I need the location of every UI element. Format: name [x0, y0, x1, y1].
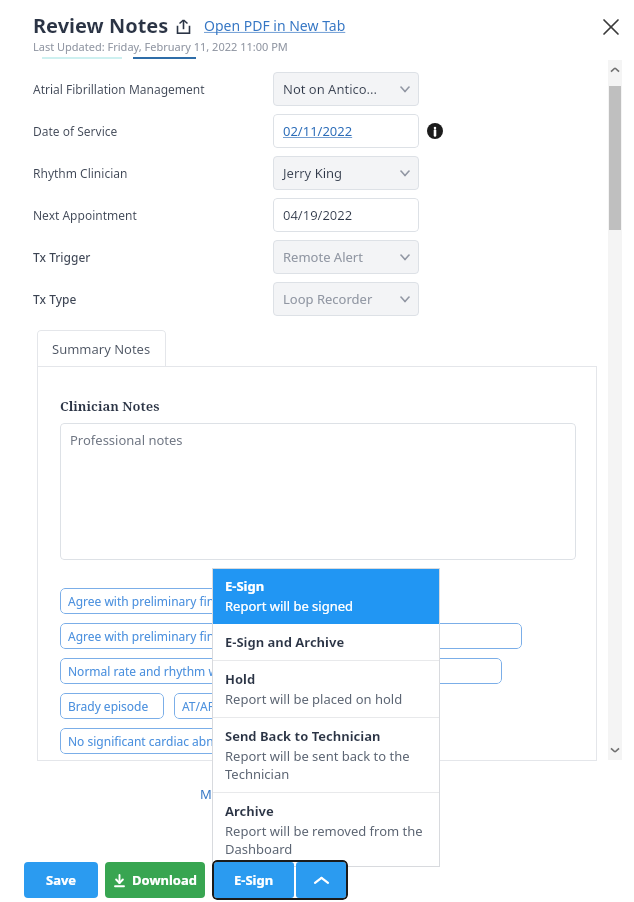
- button[interactable]: Loop Recorder: [273, 282, 419, 316]
- button[interactable]: Share: [172, 15, 194, 37]
- button[interactable]: Open PDF in New Tab: [204, 16, 346, 35]
- staticText: Clinician Notes: [60, 397, 160, 415]
- staticText: 04/19/2022: [283, 206, 353, 224]
- staticText: Download: [132, 871, 197, 889]
- button[interactable]: Send Back to Technician: [212, 717, 440, 792]
- button[interactable]: Scroll down: [608, 742, 622, 758]
- staticText: Summary Notes: [52, 340, 151, 358]
- button[interactable]: Archive: [212, 792, 440, 867]
- staticText: Open PDF in New Tab: [204, 16, 346, 35]
- button[interactable]: No significant cardiac abnormality: [60, 728, 320, 754]
- button[interactable]: Brady episode: [60, 693, 164, 719]
- staticText: Tx Type: [33, 291, 77, 307]
- button[interactable]: Summary Notes: [37, 330, 166, 367]
- staticText: Last Updated: Friday, February 11, 2022 …: [33, 39, 288, 54]
- staticText: Report will be removed from the Dashboar…: [225, 822, 430, 858]
- staticText: Not on Antico...: [283, 80, 378, 98]
- button[interactable]: Agree with preliminary findings, additio…: [60, 623, 522, 649]
- staticText: Rhythm Clinician: [33, 165, 128, 181]
- staticText: 02/11/2022: [283, 122, 353, 140]
- staticText: More Options: [200, 785, 284, 803]
- button[interactable]: Close: [598, 14, 624, 40]
- button[interactable]: 02/11/2022: [273, 114, 419, 148]
- staticText: Archive: [225, 802, 274, 820]
- button[interactable]: More actions: [296, 862, 346, 898]
- staticText: Agree with preliminary findings, additio…: [68, 628, 409, 644]
- staticText: Review Notes: [33, 12, 169, 39]
- staticText: Jerry King: [283, 164, 343, 182]
- staticText: AT/AF episode: [182, 698, 262, 714]
- staticText: E-Sign: [234, 871, 274, 889]
- button[interactable]: 04/19/2022: [273, 198, 419, 232]
- staticText: Send Back to Technician: [225, 727, 381, 745]
- staticText: E-Sign: [225, 577, 265, 595]
- button[interactable]: Remote Alert: [273, 240, 419, 274]
- staticText: Brady episode: [68, 698, 149, 714]
- staticText: Professional notes: [70, 431, 183, 449]
- button[interactable]: Save: [24, 862, 98, 898]
- button[interactable]: Agree with preliminary findings: [60, 588, 360, 614]
- staticText: Agree with preliminary findings: [68, 593, 246, 609]
- staticText: Report will be signed: [225, 597, 430, 615]
- staticText: Next Appointment: [33, 207, 137, 223]
- button[interactable]: Download: [105, 862, 205, 898]
- button[interactable]: E-Sign: [214, 862, 294, 898]
- button[interactable]: Hold: [212, 660, 440, 717]
- button[interactable]: Not on Antico...: [273, 72, 419, 106]
- staticText: Atrial Fibrillation Management: [33, 81, 205, 97]
- staticText: Report will be placed on hold: [225, 690, 430, 708]
- staticText: Normal rate and rhythm with no significa…: [68, 663, 360, 679]
- staticText: Tx Trigger: [33, 249, 91, 265]
- staticText: Date of Service: [33, 123, 118, 139]
- button[interactable]: AT/AF episode: [174, 693, 278, 719]
- staticText: No significant cardiac abnormality: [68, 733, 261, 749]
- button[interactable]: E-Sign: [212, 568, 440, 624]
- staticText: Loop Recorder: [283, 290, 373, 308]
- staticText: Save: [46, 871, 77, 889]
- staticText: E-Sign and Archive: [225, 633, 345, 651]
- button[interactable]: Normal rate and rhythm with no significa…: [60, 658, 502, 684]
- staticText: Hold: [225, 670, 256, 688]
- staticText: Report will be sent back to the Technici…: [225, 747, 430, 783]
- button[interactable]: Jerry King: [273, 156, 419, 190]
- button[interactable]: Professional notes: [60, 423, 576, 560]
- staticText: Remote Alert: [283, 248, 363, 266]
- button[interactable]: Scroll up: [608, 62, 622, 78]
- button[interactable]: E-Sign and Archive: [212, 624, 440, 660]
